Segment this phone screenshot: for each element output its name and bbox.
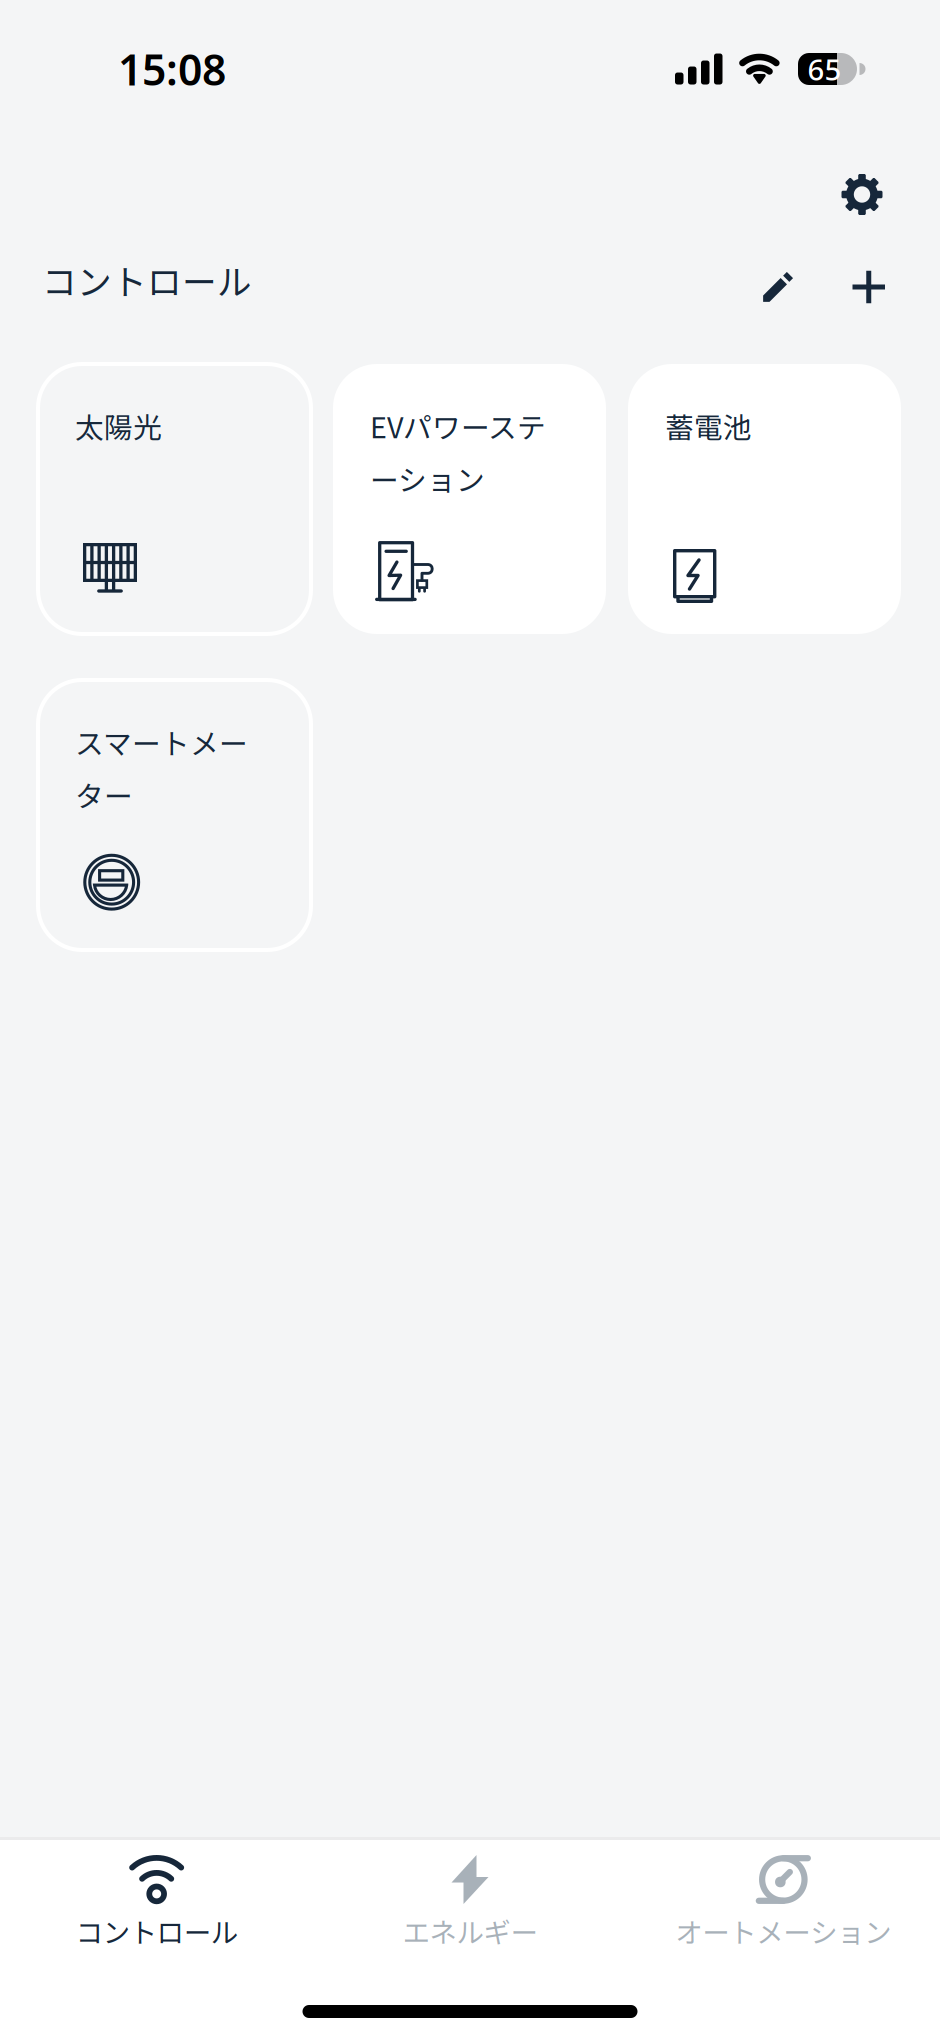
staticText: スマートメーター [75, 721, 248, 815]
staticText: EVパワーステ ーション [370, 405, 546, 499]
button[interactable]: Edit [748, 257, 807, 316]
button[interactable]: オートメーション [627, 1840, 940, 1977]
button[interactable]: Settings [827, 160, 896, 229]
staticText: コントロール [76, 1911, 238, 1951]
staticText: エネルギー [402, 1911, 537, 1951]
button[interactable]: EVパワーステ ーション [333, 364, 606, 634]
button[interactable]: コントロール [0, 1840, 313, 1977]
staticText: オートメーション [675, 1911, 891, 1951]
button[interactable]: スマートメーター [38, 680, 311, 950]
staticText: 太陽光 [75, 405, 162, 446]
button[interactable]: 太陽光 [38, 364, 311, 634]
staticText: 蓄電池 [665, 405, 752, 446]
button[interactable]: エネルギー [313, 1840, 627, 1977]
staticText: 15:08 [118, 41, 226, 97]
staticText: コントロール [42, 255, 252, 305]
staticText: 65 [807, 49, 841, 88]
button[interactable]: 蓄電池 [628, 364, 901, 634]
button[interactable]: Add [838, 257, 899, 317]
